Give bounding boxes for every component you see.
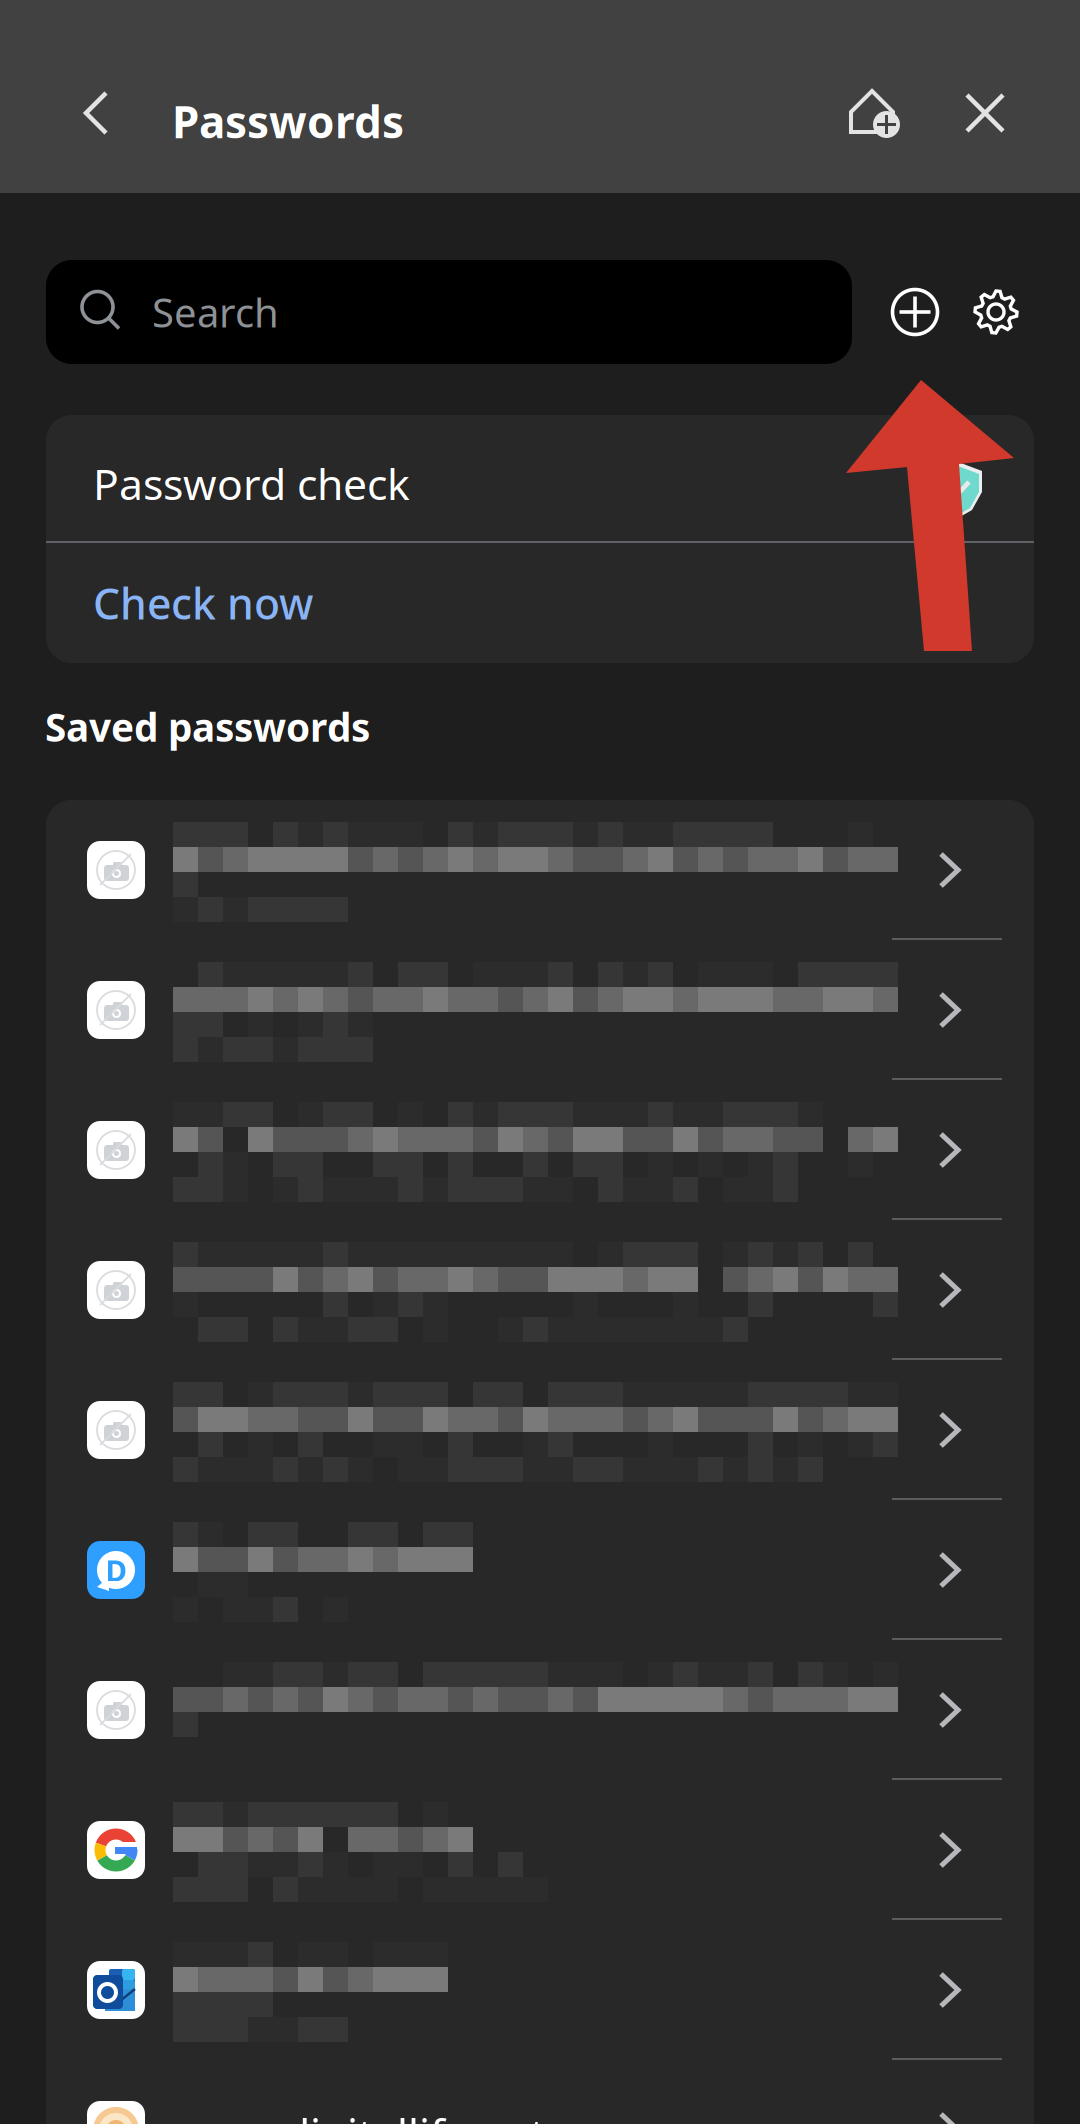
button[interactable] [46,800,1034,940]
button[interactable]: Search [46,260,852,364]
staticText: Check now [93,575,313,631]
button[interactable]: Back [48,65,144,161]
staticText: Passwords [172,92,404,150]
staticText: Search [152,285,279,338]
button[interactable]: D [46,1500,1034,1640]
staticText: D [105,1550,126,1589]
button[interactable] [46,1360,1034,1500]
button[interactable]: Add to Home screen [830,68,920,158]
button[interactable] [46,1920,1034,2060]
button[interactable] [46,940,1034,1080]
staticText: www.digitallife.net [173,2105,545,2124]
button[interactable]: Close [940,68,1030,158]
button[interactable] [46,1080,1034,1220]
button[interactable]: Check now [46,543,987,663]
button[interactable] [46,1640,1034,1780]
button[interactable]: Add password [875,272,955,352]
button[interactable]: www.digitallife.net [46,2060,1034,2124]
staticText: Saved passwords [45,701,370,752]
staticText: Password check [93,455,410,512]
button[interactable] [46,1780,1034,1920]
button[interactable]: Settings [956,272,1036,352]
button[interactable] [46,1220,1034,1360]
